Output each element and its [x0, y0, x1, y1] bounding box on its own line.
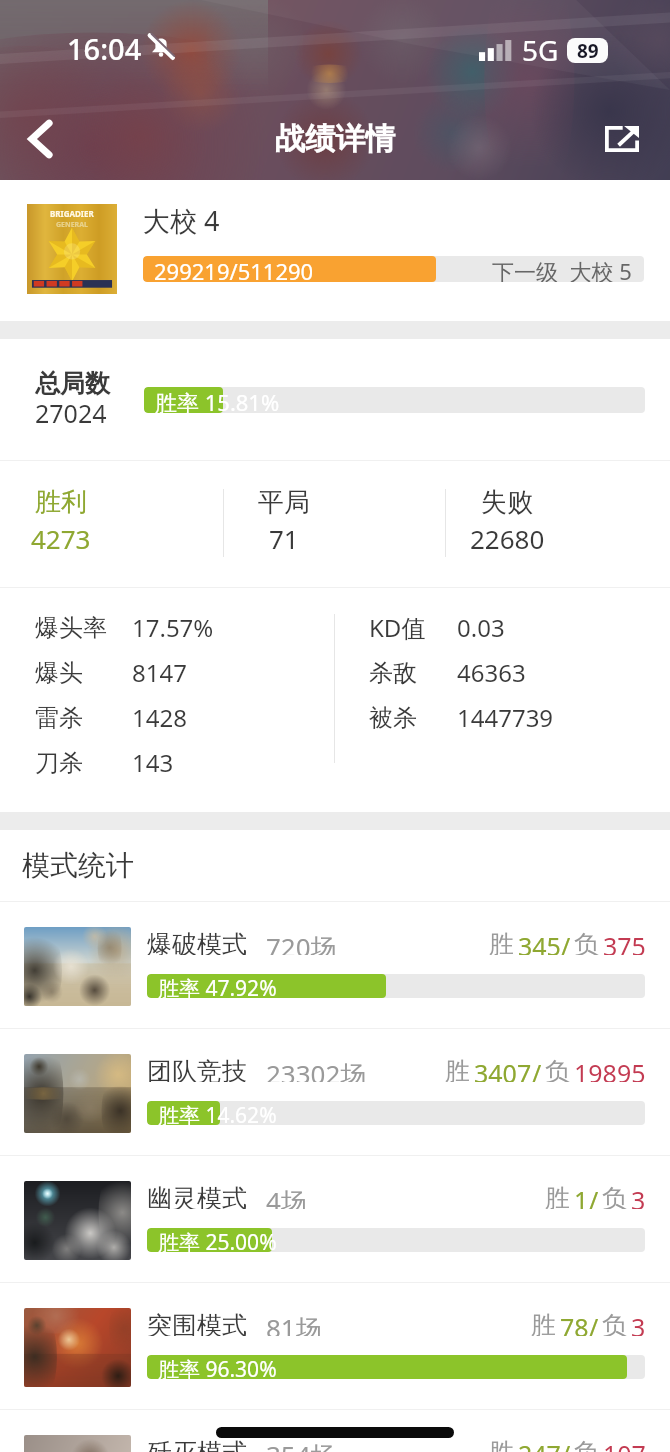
- staticText: 胜: [445, 1056, 470, 1082]
- staticText: 平局: [258, 486, 310, 519]
- staticText: 4273: [31, 521, 91, 556]
- staticText: 375: [603, 929, 646, 955]
- staticText: 354场: [266, 1437, 337, 1452]
- staticText: KD值: [369, 611, 426, 644]
- staticText: 被杀: [369, 703, 417, 733]
- staticText: 团队竞技: [147, 1056, 247, 1082]
- staticText: /: [589, 1310, 599, 1336]
- staticText: /: [589, 1183, 599, 1209]
- button[interactable]: 团队竞技: [0, 1029, 670, 1155]
- staticText: 3: [631, 1183, 646, 1209]
- staticText: 0.03: [457, 611, 505, 644]
- staticText: 78: [560, 1310, 589, 1336]
- staticText: 大校 4: [143, 202, 220, 239]
- staticText: 3407: [474, 1056, 532, 1082]
- staticText: 胜率 14.62%: [158, 1101, 277, 1125]
- staticText: 345: [518, 929, 561, 955]
- staticText: 247: [518, 1437, 561, 1452]
- staticText: 爆头率: [35, 613, 107, 643]
- staticText: 27024: [35, 396, 107, 430]
- staticText: 负: [545, 1056, 570, 1082]
- staticText: 负: [602, 1310, 627, 1336]
- staticText: 1: [574, 1183, 589, 1209]
- staticText: 负: [574, 929, 599, 955]
- staticText: 71: [269, 521, 299, 556]
- staticText: 雷杀: [35, 703, 83, 733]
- staticText: /: [532, 1056, 542, 1082]
- button[interactable]: 幽灵模式: [0, 1156, 670, 1282]
- staticText: 5G: [522, 31, 559, 69]
- staticText: 负: [602, 1183, 627, 1209]
- button[interactable]: Back: [6, 98, 74, 180]
- button[interactable]: Share: [588, 98, 656, 180]
- staticText: 胜率 47.92%: [158, 974, 277, 998]
- staticText: 歼灭模式: [147, 1437, 247, 1452]
- staticText: 胜利: [35, 486, 87, 519]
- staticText: 1428: [132, 701, 187, 734]
- staticText: 胜: [545, 1183, 570, 1209]
- staticText: 3: [631, 1310, 646, 1336]
- staticText: 杀敌: [369, 658, 417, 688]
- staticText: 107: [603, 1437, 646, 1452]
- staticText: 299219/511290: [154, 256, 314, 282]
- staticText: 爆头: [35, 658, 83, 688]
- staticText: 刀杀: [35, 748, 83, 778]
- staticText: 胜: [489, 929, 514, 955]
- staticText: 22680: [470, 521, 545, 556]
- staticText: 23302场: [266, 1056, 367, 1082]
- staticText: /: [561, 1437, 571, 1452]
- staticText: 143: [132, 746, 174, 779]
- staticText: 720场: [266, 929, 337, 955]
- staticText: 胜率 15.81%: [155, 387, 280, 413]
- staticText: 89: [577, 38, 599, 63]
- staticText: 4场: [266, 1183, 307, 1209]
- staticText: GENERAL: [56, 220, 88, 230]
- button[interactable]: 突围模式: [0, 1283, 670, 1409]
- button[interactable]: 爆破模式: [0, 902, 670, 1028]
- staticText: 幽灵模式: [147, 1183, 247, 1209]
- staticText: 胜率 96.30%: [158, 1355, 277, 1379]
- staticText: 17.57%: [132, 611, 214, 644]
- staticText: 下一级 大校 5: [492, 256, 632, 282]
- staticText: 负: [574, 1437, 599, 1452]
- staticText: 16:04: [67, 29, 142, 68]
- staticText: 爆破模式: [147, 929, 247, 955]
- staticText: /: [561, 929, 571, 955]
- staticText: 8147: [132, 656, 187, 689]
- staticText: 胜率 25.00%: [158, 1228, 277, 1252]
- staticText: 突围模式: [147, 1310, 247, 1336]
- staticText: BRIGADIER: [50, 208, 94, 219]
- staticText: 46363: [457, 656, 526, 689]
- staticText: 胜: [531, 1310, 556, 1336]
- staticText: 胜: [489, 1437, 514, 1452]
- staticText: 失败: [481, 486, 533, 519]
- staticText: 模式统计: [22, 848, 134, 883]
- button[interactable]: 歼灭模式: [0, 1410, 670, 1452]
- staticText: 总局数: [35, 368, 110, 399]
- staticText: 19895: [574, 1056, 646, 1082]
- staticText: 1447739: [457, 701, 554, 734]
- staticText: 81场: [266, 1310, 322, 1336]
- staticText: 战绩详情: [275, 120, 395, 158]
